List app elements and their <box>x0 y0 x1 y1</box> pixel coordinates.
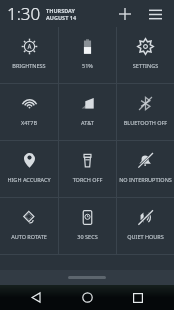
staticText: AUTO ROTATE <box>0 233 58 240</box>
button[interactable]: 51% <box>59 27 116 83</box>
button[interactable]: Recent apps <box>123 285 153 310</box>
staticText: NO INTERRUPTIONS <box>117 176 174 183</box>
staticText: QUIET HOURS <box>117 233 174 240</box>
button[interactable]: Back <box>21 285 51 310</box>
staticText: 30 SECS <box>59 233 116 240</box>
button[interactable]: QUIET HOURS <box>117 198 174 254</box>
button[interactable]: SETTINGS <box>117 27 174 83</box>
button[interactable]: Menu <box>143 2 167 26</box>
staticText: HIGH ACCURACY <box>0 176 58 183</box>
button[interactable]: Collapse panel <box>0 270 174 285</box>
button[interactable]: BLUETOOTH OFF <box>117 84 174 140</box>
button[interactable]: NO INTERRUPTIONS <box>117 141 174 197</box>
staticText: 51% <box>59 62 116 69</box>
button[interactable]: 30 SECS <box>59 198 116 254</box>
staticText: SETTINGS <box>117 62 174 69</box>
staticText: BRIGHTNESS <box>0 62 58 69</box>
staticText: THURSDAY <box>46 7 76 14</box>
staticText: AT&T <box>59 119 116 126</box>
staticText: X4T7B <box>0 119 58 126</box>
button[interactable]: Add user <box>113 2 137 26</box>
staticText: TORCH OFF <box>59 176 116 183</box>
button[interactable]: TORCH OFF <box>59 141 116 197</box>
button[interactable]: Home <box>72 285 102 310</box>
button[interactable]: BRIGHTNESS <box>0 27 58 83</box>
button[interactable]: AT&T <box>59 84 116 140</box>
button[interactable]: AUTO ROTATE <box>0 198 58 254</box>
staticText: AUGUST 14 <box>46 14 77 21</box>
button[interactable]: HIGH ACCURACY <box>0 141 58 197</box>
button[interactable]: X4T7B <box>0 84 58 140</box>
staticText: 1:30 <box>7 2 41 25</box>
staticText: BLUETOOTH OFF <box>117 119 174 126</box>
